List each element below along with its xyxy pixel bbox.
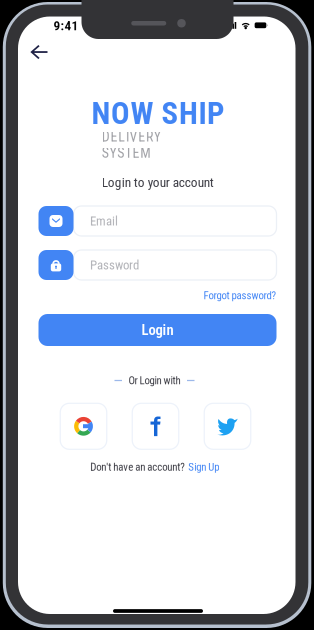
button[interactable]: Sign in with Twitter	[204, 403, 251, 449]
button[interactable]: Forgot password?	[186, 288, 276, 302]
staticText: Login to your account	[102, 175, 214, 190]
staticText: Sign Up	[188, 461, 219, 473]
staticText: Password	[90, 257, 139, 272]
button[interactable]: Back	[24, 38, 54, 66]
staticText: NOW SHIP	[91, 95, 224, 131]
button[interactable]: Sign in with Google	[60, 403, 107, 449]
staticText: Or Login with	[128, 374, 180, 387]
staticText: 9:41	[53, 18, 78, 33]
staticText: Login	[141, 321, 173, 339]
staticText: Forgot password?	[203, 289, 276, 302]
button[interactable]: Don't have an account?	[90, 461, 219, 473]
staticText: Email	[90, 213, 118, 228]
button[interactable]: Sign in with Facebook	[132, 403, 179, 449]
staticText: Don't have an account?	[90, 461, 185, 473]
staticText: DELIVERY SYSTEM	[102, 129, 214, 145]
button[interactable]: Login	[38, 314, 276, 346]
